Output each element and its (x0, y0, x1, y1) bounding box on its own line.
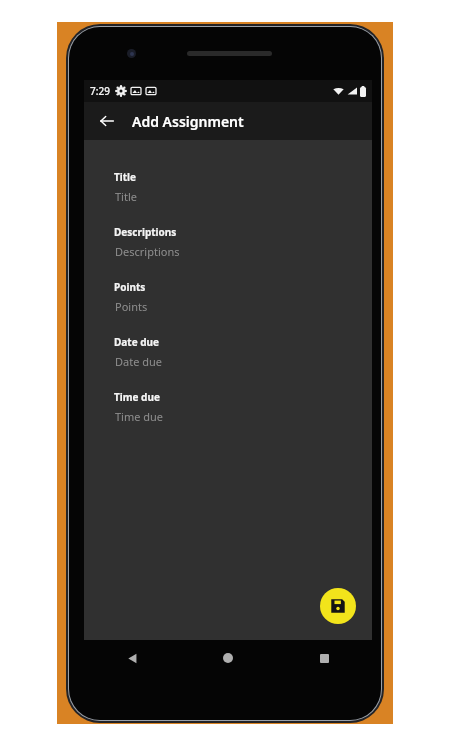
staticText: Date due (114, 335, 160, 349)
staticText: Time due (115, 409, 164, 424)
button[interactable]: Points (114, 294, 348, 318)
staticText: Points (114, 280, 146, 294)
button[interactable]: Save (320, 588, 356, 624)
button[interactable]: Recents (276, 640, 372, 676)
staticText: Title (114, 170, 137, 184)
button[interactable]: Back (84, 640, 180, 676)
staticText: Points (115, 299, 148, 314)
staticText: Date due (115, 354, 163, 369)
button[interactable]: Back (92, 106, 122, 136)
button[interactable]: Title (114, 184, 348, 208)
staticText: Time due (114, 390, 160, 404)
staticText: 7:29 (90, 84, 110, 98)
staticText: Add Assignment (132, 112, 244, 131)
button[interactable]: Date due (114, 349, 348, 373)
button[interactable]: Time due (114, 404, 348, 428)
staticText: Title (115, 189, 137, 204)
staticText: Descriptions (114, 225, 177, 239)
staticText: Descriptions (115, 244, 180, 259)
button[interactable]: Home (180, 640, 276, 676)
button[interactable]: Descriptions (114, 239, 348, 263)
